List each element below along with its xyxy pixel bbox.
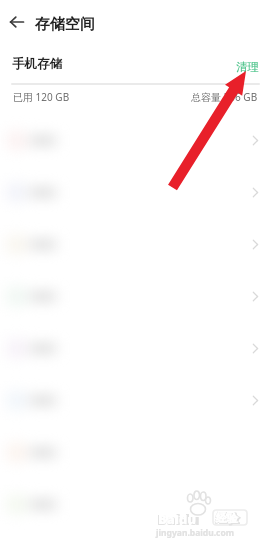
button[interactable] xyxy=(0,270,274,322)
button[interactable]: Back xyxy=(1,6,33,38)
button[interactable] xyxy=(0,374,274,426)
button[interactable] xyxy=(0,322,274,374)
staticText: 已用 120 GB xyxy=(13,90,70,104)
button[interactable] xyxy=(0,114,274,166)
staticText: Baidu xyxy=(157,509,200,529)
button[interactable] xyxy=(0,218,274,270)
button[interactable] xyxy=(0,478,274,530)
staticText: 经验 xyxy=(216,512,238,526)
staticText: Baidu xyxy=(158,510,196,528)
staticText: jingyan.baidu.com xyxy=(156,527,235,539)
staticText: 存储空间 xyxy=(35,15,95,34)
button[interactable] xyxy=(0,166,274,218)
button[interactable]: 清理 xyxy=(232,56,263,78)
button[interactable] xyxy=(0,426,274,478)
staticText: 清理 xyxy=(236,60,259,74)
staticText: 总容量 256 GB xyxy=(191,90,258,104)
staticText: 经验 xyxy=(215,511,240,527)
staticText: 手机存储 xyxy=(12,56,62,72)
